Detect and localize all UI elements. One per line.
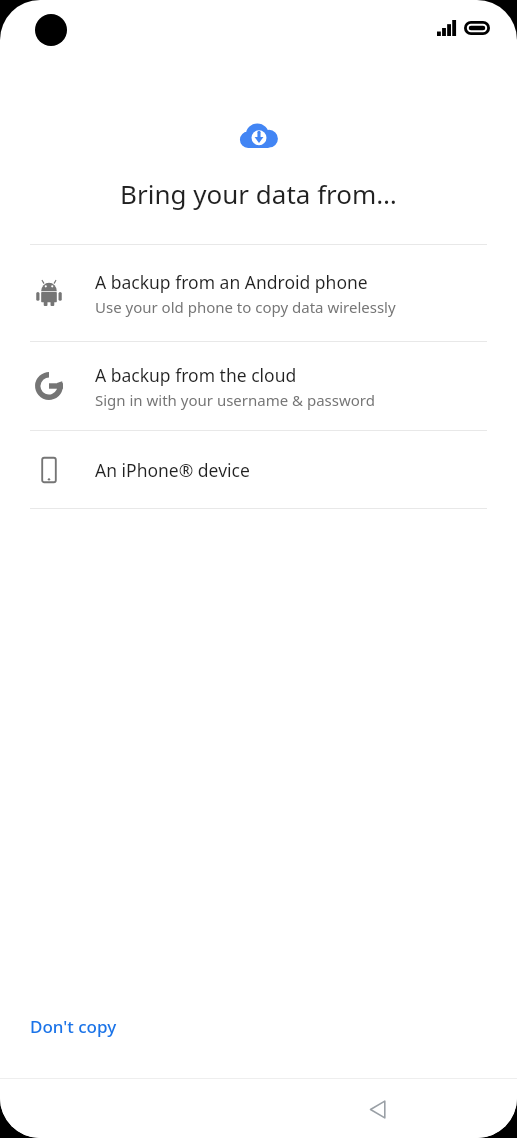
staticText: Use your old phone to copy data wireless… — [95, 297, 396, 317]
button[interactable]: Back — [355, 1086, 401, 1132]
staticText: A backup from the cloud — [95, 363, 297, 387]
staticText: Bring your data from… — [120, 176, 397, 211]
button[interactable]: A backup from an Android phone — [0, 245, 517, 341]
button[interactable]: An iPhone® device — [0, 431, 517, 508]
staticText: Sign in with your username & password — [95, 390, 375, 410]
button[interactable]: A backup from the cloud — [0, 342, 517, 430]
staticText: A backup from an Android phone — [95, 270, 368, 294]
staticText: Don't copy — [30, 1015, 117, 1038]
staticText: An iPhone® device — [95, 458, 250, 482]
button[interactable]: Don't copy — [16, 1003, 131, 1050]
